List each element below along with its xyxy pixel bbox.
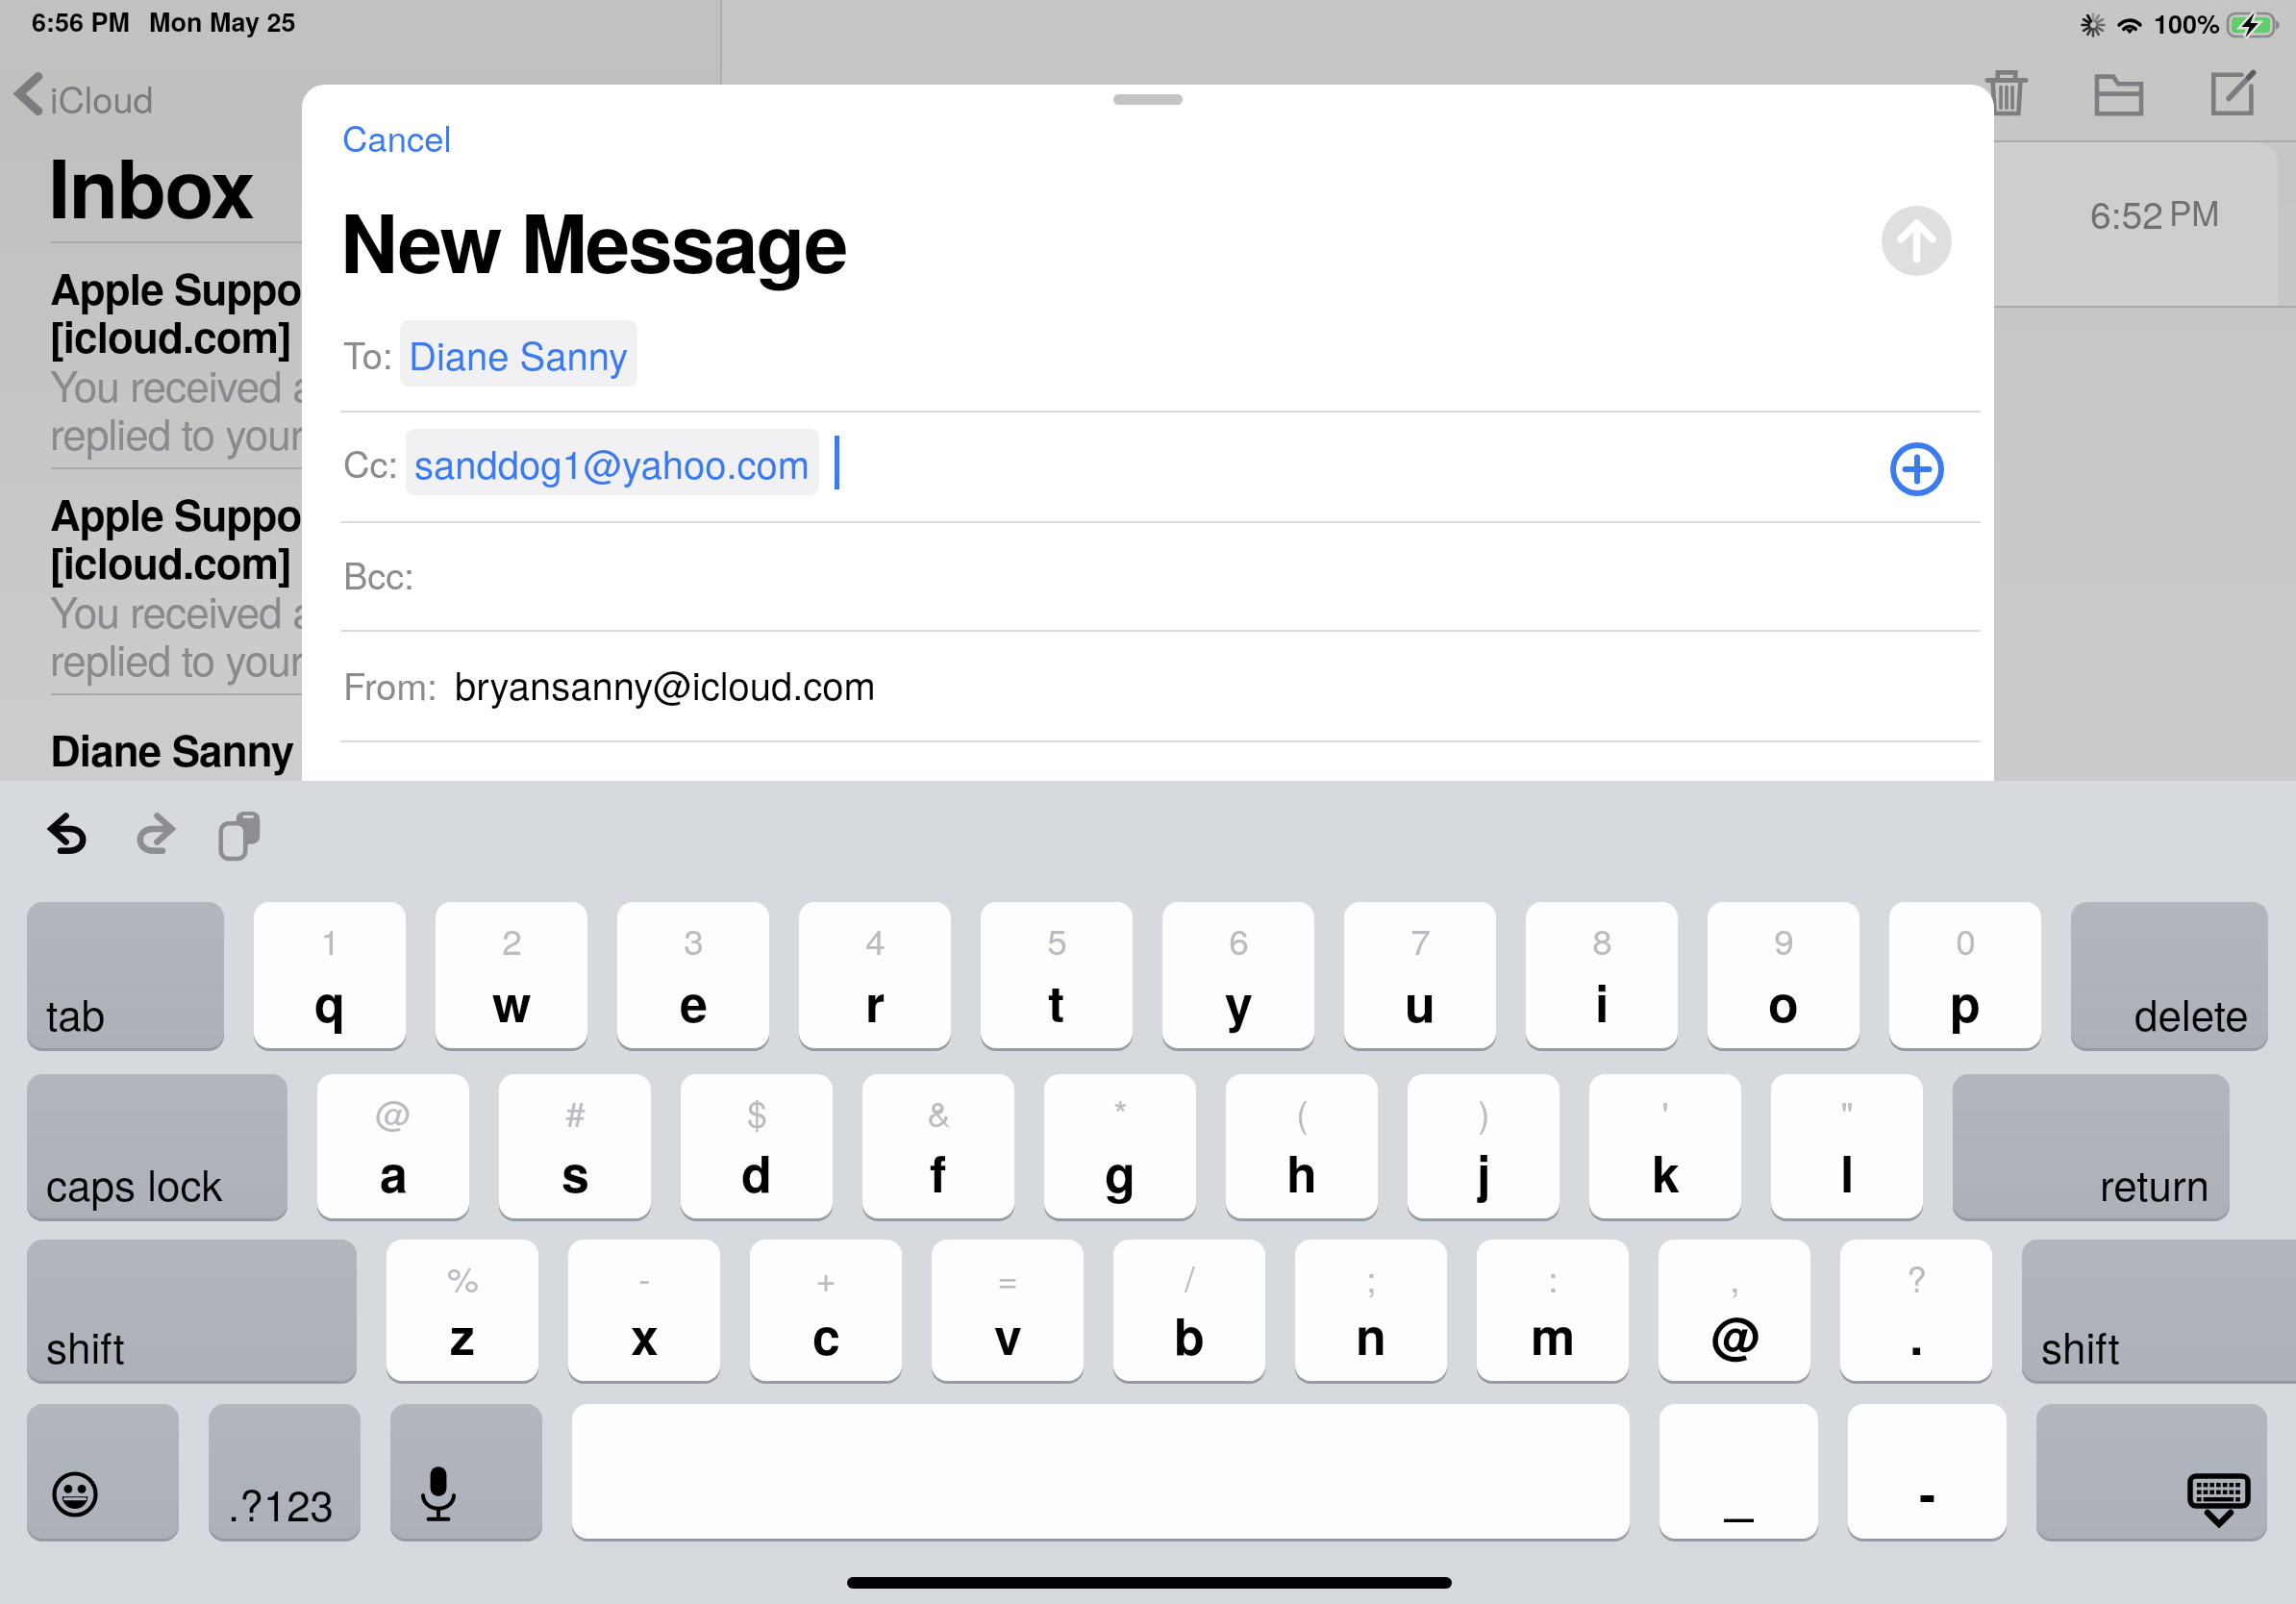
button[interactable]: (: [1226, 1074, 1378, 1218]
staticText: *: [1113, 1087, 1128, 1138]
button[interactable]: iCloud: [10, 60, 202, 129]
staticText: 7: [1410, 915, 1431, 965]
button[interactable]: ?: [1840, 1240, 1992, 1381]
staticText: 2: [502, 915, 522, 965]
button[interactable]: 1: [254, 902, 406, 1048]
staticText: Mon May 25: [149, 3, 296, 40]
button[interactable]: New message: [2193, 52, 2274, 127]
staticText: t: [1048, 965, 1065, 1037]
staticText: .: [1909, 1298, 1924, 1369]
button[interactable]: :: [1477, 1240, 1629, 1381]
button[interactable]: 9: [1708, 902, 1859, 1048]
staticText: 9: [1774, 915, 1794, 965]
staticText: You received a: [50, 353, 315, 414]
button[interactable]: To:: [302, 313, 1994, 393]
staticText: j: [1477, 1136, 1491, 1207]
button[interactable]: caps lock: [27, 1074, 287, 1218]
button[interactable]: $: [681, 1074, 833, 1218]
staticText: return: [2100, 1152, 2210, 1213]
button[interactable]: ;: [1295, 1240, 1447, 1381]
staticText: 5: [1047, 915, 1067, 965]
staticText: ?: [1907, 1252, 1927, 1303]
button[interactable]: delete: [2071, 902, 2268, 1048]
button[interactable]: .?123: [209, 1404, 361, 1539]
button[interactable]: %: [387, 1240, 538, 1381]
staticText: f: [930, 1136, 947, 1207]
button[interactable]: ": [1771, 1074, 1923, 1218]
button[interactable]: -: [1848, 1404, 2007, 1539]
staticText: p: [1950, 965, 1981, 1037]
staticText: $: [747, 1087, 767, 1138]
button[interactable]: 3: [617, 902, 769, 1048]
button[interactable]: Hide keyboard: [2036, 1404, 2267, 1539]
staticText: Bcc:: [343, 547, 414, 599]
button[interactable]: 7: [1344, 902, 1496, 1048]
staticText: tab: [46, 982, 106, 1042]
button[interactable]: Undo: [29, 794, 106, 871]
button[interactable]: /: [1113, 1240, 1265, 1381]
button[interactable]: Apple Suppo: [0, 481, 2296, 664]
staticText: ;: [1366, 1252, 1377, 1303]
button[interactable]: 2: [436, 902, 587, 1048]
staticText: -: [1919, 1456, 1936, 1527]
button[interactable]: #: [499, 1074, 651, 1218]
button[interactable]: +: [750, 1240, 902, 1381]
button[interactable]: 8: [1526, 902, 1678, 1048]
staticText: @: [1710, 1298, 1759, 1369]
button[interactable]: 0: [1889, 902, 2041, 1048]
button[interactable]: Add contact: [1890, 442, 1944, 496]
button[interactable]: Paste: [200, 794, 277, 871]
staticText: 8: [1592, 915, 1612, 965]
staticText: 0: [1956, 915, 1976, 965]
button[interactable]: Move to folder: [2080, 52, 2160, 127]
staticText: (: [1296, 1087, 1309, 1138]
button[interactable]: 4: [799, 902, 951, 1048]
staticText: #: [565, 1087, 586, 1138]
button[interactable]: return: [1953, 1074, 2230, 1218]
staticText: z: [450, 1298, 476, 1369]
button[interactable]: Emoji: [27, 1404, 179, 1539]
staticText: &: [927, 1087, 951, 1138]
staticText: [icloud.com] -: [50, 305, 315, 365]
staticText: _: [1725, 1456, 1753, 1527]
staticText: y: [1225, 965, 1253, 1037]
button[interactable]: ): [1408, 1074, 1560, 1218]
button[interactable]: _: [1660, 1404, 1818, 1539]
staticText: s: [562, 1136, 589, 1207]
button[interactable]: =: [932, 1240, 1084, 1381]
button[interactable]: -: [568, 1240, 720, 1381]
staticText: 100%: [2154, 5, 2221, 42]
button[interactable]: Send: [1882, 206, 1952, 276]
button[interactable]: Delete: [1966, 52, 2047, 127]
staticText: Diane Sanny: [409, 326, 629, 381]
staticText: [icloud.com] -: [50, 531, 315, 591]
button[interactable]: 6: [1162, 902, 1314, 1048]
staticText: l: [1840, 1136, 1855, 1207]
staticText: 6: [1229, 915, 1249, 965]
button[interactable]: &: [862, 1074, 1014, 1218]
staticText: x: [631, 1298, 659, 1369]
staticText: replied to your: [50, 627, 304, 688]
button[interactable]: Cc:: [302, 421, 1994, 502]
button[interactable]: ,: [1659, 1240, 1810, 1381]
button[interactable]: Dictation: [390, 1404, 542, 1539]
staticText: %: [447, 1252, 479, 1303]
button[interactable]: ': [1589, 1074, 1741, 1218]
staticText: ): [1478, 1087, 1490, 1138]
button[interactable]: Apple Suppo: [0, 255, 2296, 438]
button[interactable]: Cancel: [333, 104, 462, 169]
staticText: To:: [343, 327, 393, 379]
button[interactable]: tab: [27, 902, 224, 1048]
button[interactable]: 5: [981, 902, 1133, 1048]
button[interactable]: shift: [2022, 1240, 2296, 1381]
button[interactable]: *: [1044, 1074, 1196, 1218]
button[interactable]: Bcc:: [302, 533, 1994, 614]
staticText: ADDRESS CHA: [50, 766, 351, 827]
staticText: 3: [684, 915, 704, 965]
staticText: .?123: [228, 1472, 335, 1533]
button[interactable]: Redo: [115, 794, 192, 871]
button[interactable]: From:: [302, 633, 1994, 729]
button[interactable]: @: [317, 1074, 469, 1218]
button[interactable]: shift: [27, 1240, 357, 1381]
